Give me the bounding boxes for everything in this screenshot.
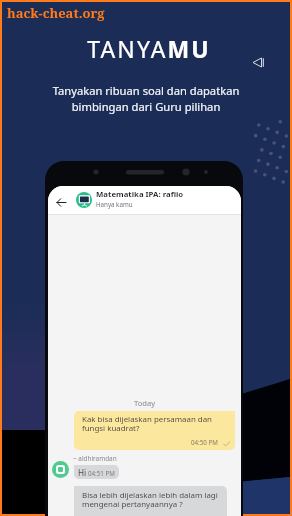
staticText: Today xyxy=(48,398,241,408)
staticText: 04:50 PM xyxy=(191,438,218,446)
button[interactable]: Sound xyxy=(248,52,270,74)
staticText: Matematika IPA: rafiio xyxy=(96,189,184,200)
staticText: ~ aldhiramdan xyxy=(73,454,117,463)
staticText: 04:51 PM xyxy=(88,469,115,477)
staticText: Hanya kamu xyxy=(96,200,133,208)
staticText: Tanyakan ribuan soal dan dapatkan bimbin… xyxy=(2,83,290,114)
staticText: Kak bisa dijelaskan persamaan dan fungsi… xyxy=(82,414,222,434)
button[interactable]: Bisa lebih dijelaskan lebih dalam lagi m… xyxy=(74,486,227,516)
staticText: Bisa lebih dijelaskan lebih dalam lagi m… xyxy=(82,490,220,510)
button[interactable]: Back xyxy=(53,194,69,210)
button[interactable]: Kak bisa dijelaskan persamaan dan fungsi… xyxy=(74,411,235,450)
button[interactable]: Hi xyxy=(74,465,119,479)
staticText: TANYAMU xyxy=(5,33,292,64)
staticText: Hi xyxy=(78,467,87,478)
staticText: hack-cheat.org xyxy=(7,4,105,22)
